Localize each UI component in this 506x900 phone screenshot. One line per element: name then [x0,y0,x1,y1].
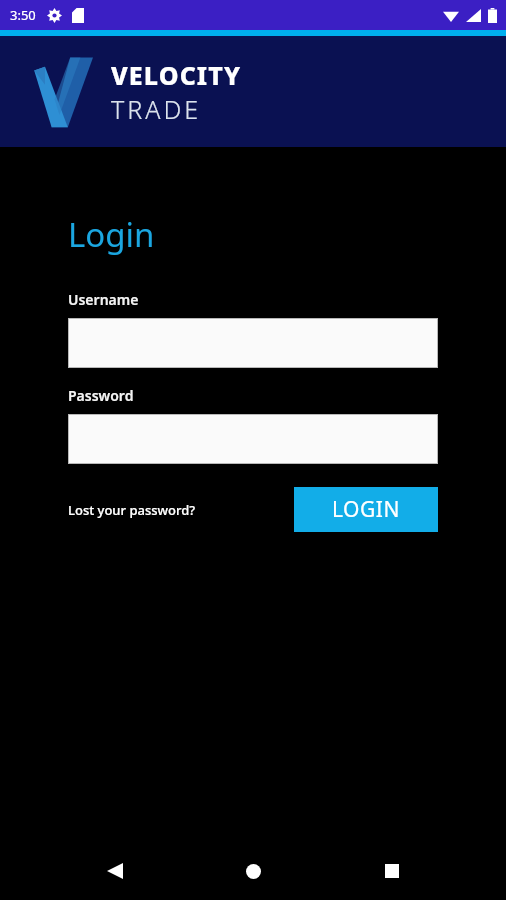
button[interactable]: Home [229,847,277,895]
staticText: Username [68,290,139,309]
staticText: LOGIN [332,495,400,524]
staticText: 3:50 [10,6,36,24]
button[interactable]: Back [91,847,139,895]
staticText: TRADE [111,92,202,126]
button[interactable]: Recent apps [368,847,416,895]
staticText: Login [68,212,155,257]
button[interactable]: Text input field [68,318,438,368]
staticText: Password [68,386,134,405]
staticText: VELOCITY [111,58,242,92]
button[interactable]: Lost your password? [68,495,196,525]
staticText: Lost your password? [68,501,196,519]
button[interactable]: Text input field [68,414,438,464]
button[interactable]: LOGIN [294,487,438,532]
